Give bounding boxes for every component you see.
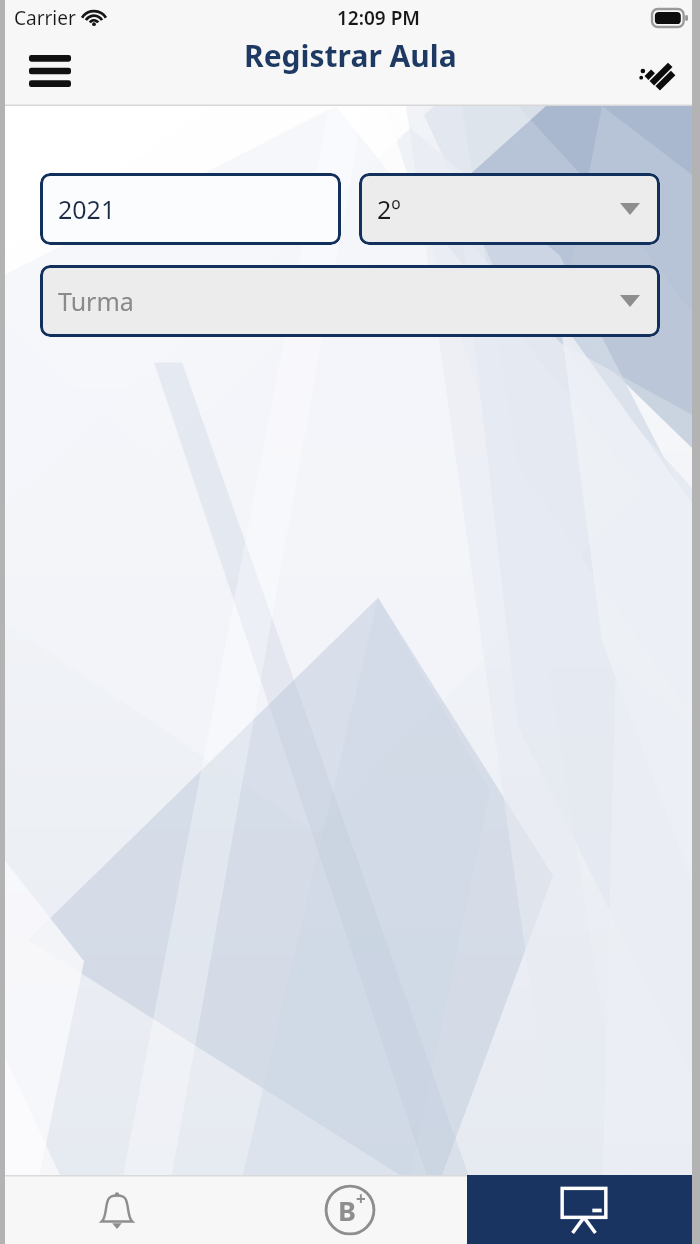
button[interactable]: 2º bbox=[359, 173, 660, 245]
staticText: 12:09 PM bbox=[337, 5, 420, 31]
staticText: Turma bbox=[58, 284, 134, 318]
staticText: Registrar Aula bbox=[244, 35, 457, 76]
staticText: 2021 bbox=[58, 192, 116, 226]
staticText: + bbox=[356, 1187, 366, 1210]
staticText: 2º bbox=[377, 192, 401, 226]
staticText: B bbox=[338, 1192, 356, 1229]
button[interactable]: Register class bbox=[467, 1175, 700, 1244]
staticText: Carrier bbox=[14, 5, 76, 31]
button[interactable]: App logo bbox=[630, 43, 686, 99]
button[interactable]: Notifications bbox=[0, 1175, 233, 1244]
button[interactable]: Grades bbox=[233, 1175, 467, 1244]
button[interactable]: Turma bbox=[40, 265, 660, 337]
button[interactable]: 2021 bbox=[40, 173, 341, 245]
button[interactable]: Menu bbox=[22, 43, 78, 99]
